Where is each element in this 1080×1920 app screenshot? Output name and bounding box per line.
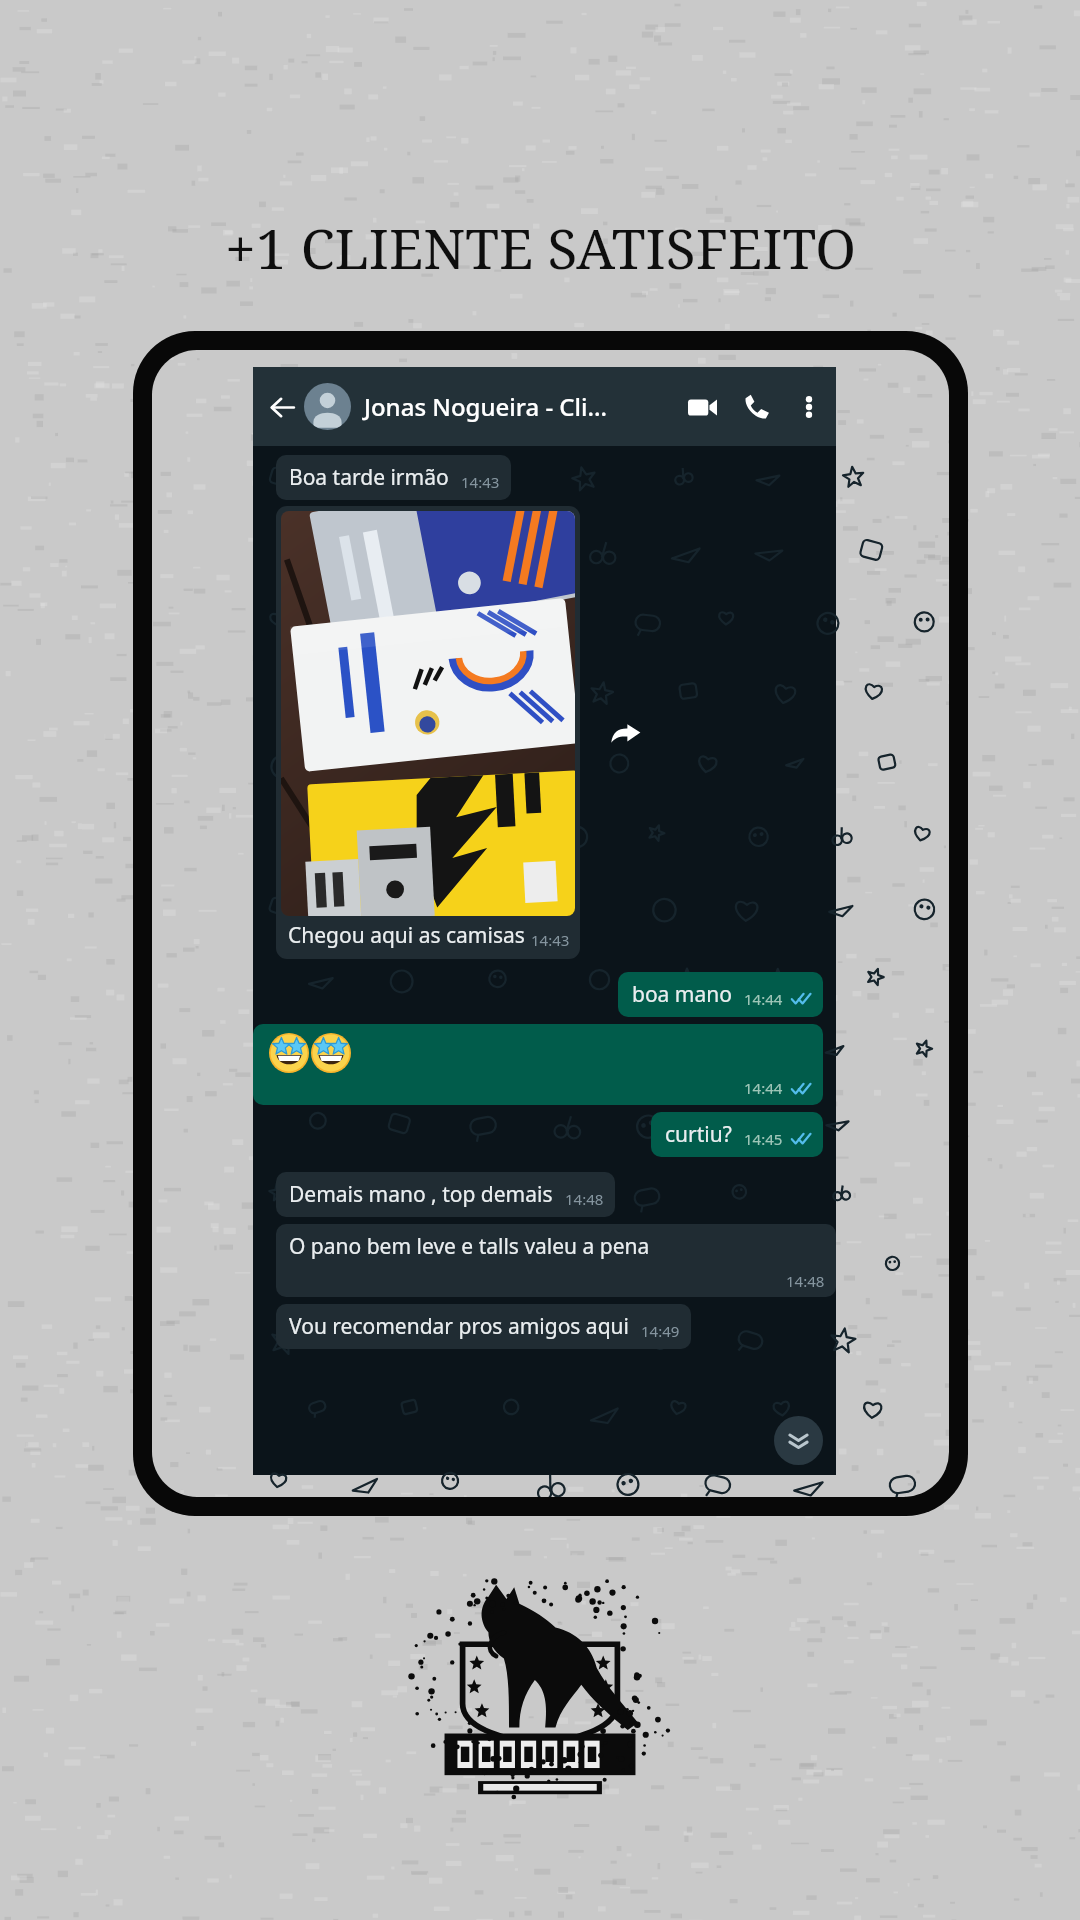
staticText: 14:49 (641, 1321, 680, 1341)
button[interactable]: Scroll to bottom (774, 1416, 823, 1465)
button[interactable]: curtiu? (651, 1112, 823, 1157)
staticText: 14:43 (461, 472, 500, 492)
button[interactable]: Forward (607, 715, 643, 751)
button[interactable]: Jonas Nogueira - Cli... (304, 367, 674, 446)
staticText: Boa tarde irmão (289, 463, 449, 492)
button[interactable]: Boa tarde irmão (276, 455, 511, 500)
button[interactable]: More options (784, 382, 834, 432)
button[interactable]: O pano bem leve e talls valeu a pena (276, 1224, 836, 1297)
button[interactable]: Demais mano , top demais (276, 1172, 615, 1217)
staticText: 14:44 (744, 989, 783, 1009)
staticText: +1 CLIENTE SATISFEITO (225, 210, 856, 285)
button[interactable]: Chegou aqui as camisas (276, 506, 580, 959)
staticText: Demais mano , top demais (289, 1180, 553, 1209)
staticText: 14:48 (565, 1189, 604, 1209)
staticText: boa mano (632, 980, 732, 1009)
staticText: Jonas Nogueira - Cli... (364, 390, 608, 423)
staticText: 14:48 (786, 1271, 825, 1291)
staticText: curtiu? (665, 1120, 732, 1149)
staticText: Chegou aqui as camisas (288, 921, 525, 950)
staticText: 14:43 (531, 930, 570, 950)
staticText: 14:45 (744, 1129, 783, 1149)
button[interactable]: boa mano (618, 972, 823, 1017)
button[interactable]: Video call (674, 379, 730, 435)
button[interactable]: Vou recomendar pros amigos aqui (276, 1304, 691, 1349)
button[interactable]: 14:44 (253, 1024, 823, 1105)
staticText: 14:44 (744, 1078, 783, 1098)
staticText: Vou recomendar pros amigos aqui (289, 1312, 629, 1341)
staticText: O pano bem leve e talls valeu a pena (289, 1232, 650, 1261)
button[interactable]: Back (261, 386, 303, 428)
button[interactable]: Voice call (730, 380, 784, 434)
